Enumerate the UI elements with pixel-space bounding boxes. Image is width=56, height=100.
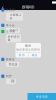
staticText: 李小云 — [6, 24, 15, 27]
staticText: 取消 — [19, 53, 25, 57]
staticText: 收到了 — [10, 29, 19, 32]
staticText: OK — [11, 80, 15, 83]
staticText: 好的没问题 — [8, 35, 20, 41]
button[interactable]: Back — [2, 3, 4, 11]
staticText: 确定 — [32, 53, 38, 57]
staticText: 王小强 — [6, 30, 15, 33]
button[interactable]: 发送消息 — [27, 93, 56, 100]
staticText: 陈晓东 — [6, 58, 15, 61]
button[interactable]: 取消 — [15, 52, 28, 57]
staticText: ‹ — [2, 3, 4, 11]
staticText: 确定要退出群聊吗 — [16, 48, 40, 51]
staticText: 群聊(8) — [22, 4, 34, 10]
staticText: 刘芳 — [6, 74, 12, 78]
staticText: 张伟明 — [6, 8, 15, 11]
staticText: 我也是 — [9, 63, 18, 66]
staticText: 发送消息 — [36, 95, 48, 98]
staticText: 提示 — [25, 44, 31, 47]
button[interactable]: 确定 — [28, 52, 41, 57]
staticText: 大家晚上好 — [10, 13, 22, 20]
